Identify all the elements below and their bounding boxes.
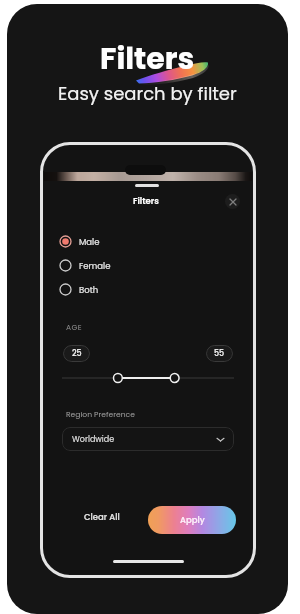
staticText: Female — [79, 260, 111, 272]
staticText: Filters — [133, 195, 159, 207]
button[interactable]: Both — [59, 283, 234, 296]
button[interactable]: 55 — [206, 345, 233, 362]
button[interactable]: Female — [59, 259, 234, 272]
staticText: Worldwide — [72, 434, 115, 445]
staticText: AGE — [66, 322, 82, 332]
staticText: 55 — [214, 348, 225, 359]
button[interactable]: Worldwide — [62, 427, 234, 451]
button[interactable]: Close — [225, 194, 240, 209]
staticText: Male — [79, 236, 100, 248]
button[interactable]: Clear All — [55, 511, 148, 523]
staticText: Apply — [180, 514, 205, 526]
staticText: Filters — [100, 38, 195, 80]
button[interactable]: Apply — [148, 506, 236, 534]
staticText: Both — [79, 284, 99, 296]
button[interactable]: Male — [59, 235, 234, 248]
staticText: Clear All — [84, 511, 120, 523]
staticText: Easy search by filter — [58, 81, 237, 106]
staticText: 25 — [72, 348, 82, 359]
staticText: Region Preference — [66, 409, 135, 420]
button[interactable]: 25 — [63, 345, 90, 362]
